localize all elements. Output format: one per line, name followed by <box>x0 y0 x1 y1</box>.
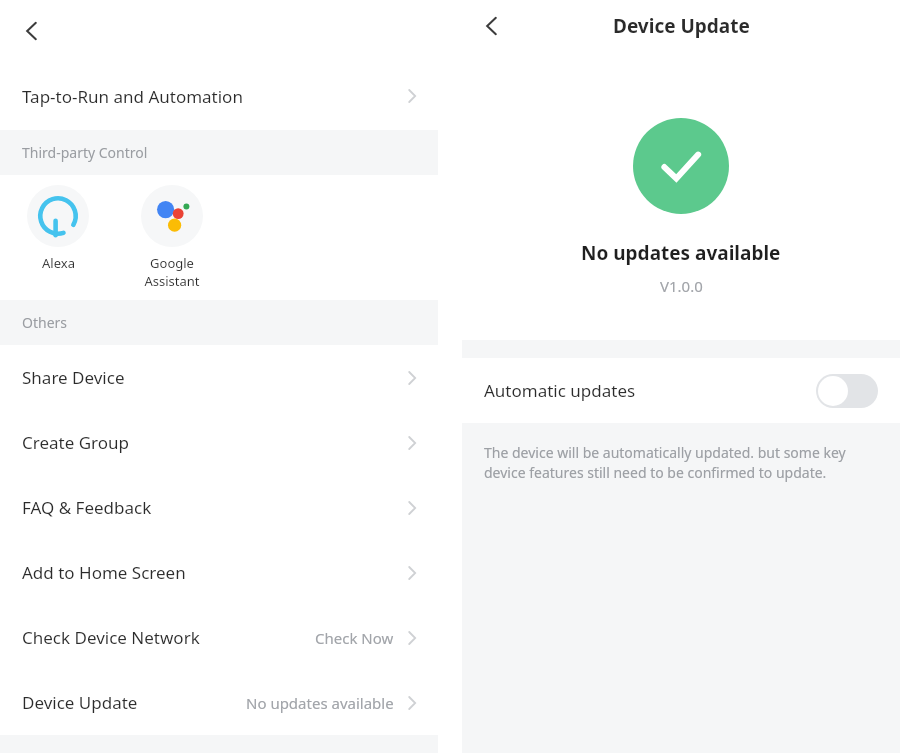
staticText: Check Now <box>315 628 394 648</box>
staticText: Others <box>22 313 68 332</box>
staticText: Device Update <box>613 13 750 39</box>
button[interactable]: Check Device Network <box>0 605 438 670</box>
staticText: Share Device <box>22 366 125 389</box>
button[interactable]: Back <box>8 7 56 55</box>
staticText: The device will be automatically updated… <box>484 443 846 483</box>
button[interactable]: Device Update <box>0 670 438 735</box>
staticText: Tap-to-Run and Automation <box>22 85 243 108</box>
staticText: Alexa <box>42 254 75 272</box>
staticText: Assistant <box>144 272 200 290</box>
button[interactable]: Automatic updates <box>462 358 900 423</box>
staticText: Google <box>150 254 194 272</box>
staticText: Add to Home Screen <box>22 561 186 584</box>
button[interactable]: Create Group <box>0 410 438 475</box>
staticText: Check Device Network <box>22 626 200 649</box>
button[interactable]: Google <box>136 185 208 290</box>
button[interactable]: Share Device <box>0 345 438 410</box>
button[interactable]: Automatic updates toggle <box>816 374 878 408</box>
staticText: Create Group <box>22 431 129 454</box>
staticText: Third-party Control <box>22 143 148 162</box>
button[interactable]: Alexa <box>22 185 94 272</box>
button[interactable]: FAQ & Feedback <box>0 475 438 540</box>
staticText: Automatic updates <box>484 379 636 402</box>
button[interactable]: Add to Home Screen <box>0 540 438 605</box>
staticText: Device Update <box>22 691 138 714</box>
staticText: No updates available <box>581 240 781 266</box>
staticText: No updates available <box>246 693 394 713</box>
staticText: FAQ & Feedback <box>22 496 152 519</box>
staticText: V1.0.0 <box>660 276 703 296</box>
button[interactable]: Back <box>470 4 514 48</box>
